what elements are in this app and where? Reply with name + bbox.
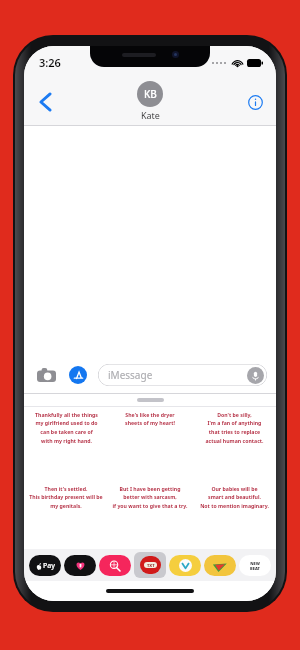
button[interactable]: Then it's settled. This birthday present… (26, 485, 106, 531)
staticText: Our babies will be smart and beautiful. … (200, 485, 269, 510)
staticText: But I have been getting better with sarc… (112, 485, 188, 510)
button[interactable]: But I have been getting better with sarc… (110, 485, 190, 531)
button[interactable]: App (169, 555, 201, 576)
staticText: 3:26 (39, 55, 61, 70)
button[interactable]: Dictate (247, 367, 264, 384)
staticText: She's like the dryer sheets of my heart! (125, 411, 175, 427)
staticText: Thankfully all the things my girlfriend … (35, 411, 98, 445)
button[interactable]: App Store (65, 362, 91, 388)
button[interactable]: App (64, 555, 96, 576)
staticText: Don't be silly, I'm a fan of anything th… (205, 411, 264, 445)
button[interactable]: Back (30, 87, 60, 117)
button[interactable]: Don't be silly, I'm a fan of anything th… (194, 411, 274, 473)
button[interactable]: Details (242, 89, 268, 115)
button[interactable]: App (239, 555, 271, 576)
staticText: TXT (147, 563, 155, 568)
button[interactable]: She's like the dryer sheets of my heart! (110, 411, 190, 473)
button[interactable]: Our babies will be smart and beautiful. … (194, 485, 274, 531)
staticText: NEW BEAT (250, 561, 260, 571)
staticText: Then it's settled. This birthday present… (29, 485, 103, 510)
staticText: iMessage (108, 368, 153, 382)
button[interactable]: Stickers app, selected (134, 552, 166, 578)
button[interactable]: iMessage (98, 364, 267, 386)
button[interactable]: Apple Pay (29, 555, 61, 576)
button[interactable]: KB (137, 81, 163, 121)
button[interactable]: App (99, 555, 131, 576)
staticText: Kate (141, 109, 160, 121)
button[interactable]: Thankfully all the things my girlfriend … (26, 411, 106, 473)
button[interactable]: App (204, 555, 236, 576)
staticText: KB (144, 87, 157, 101)
button[interactable]: Camera (33, 362, 59, 388)
staticText: Pay (43, 561, 55, 571)
